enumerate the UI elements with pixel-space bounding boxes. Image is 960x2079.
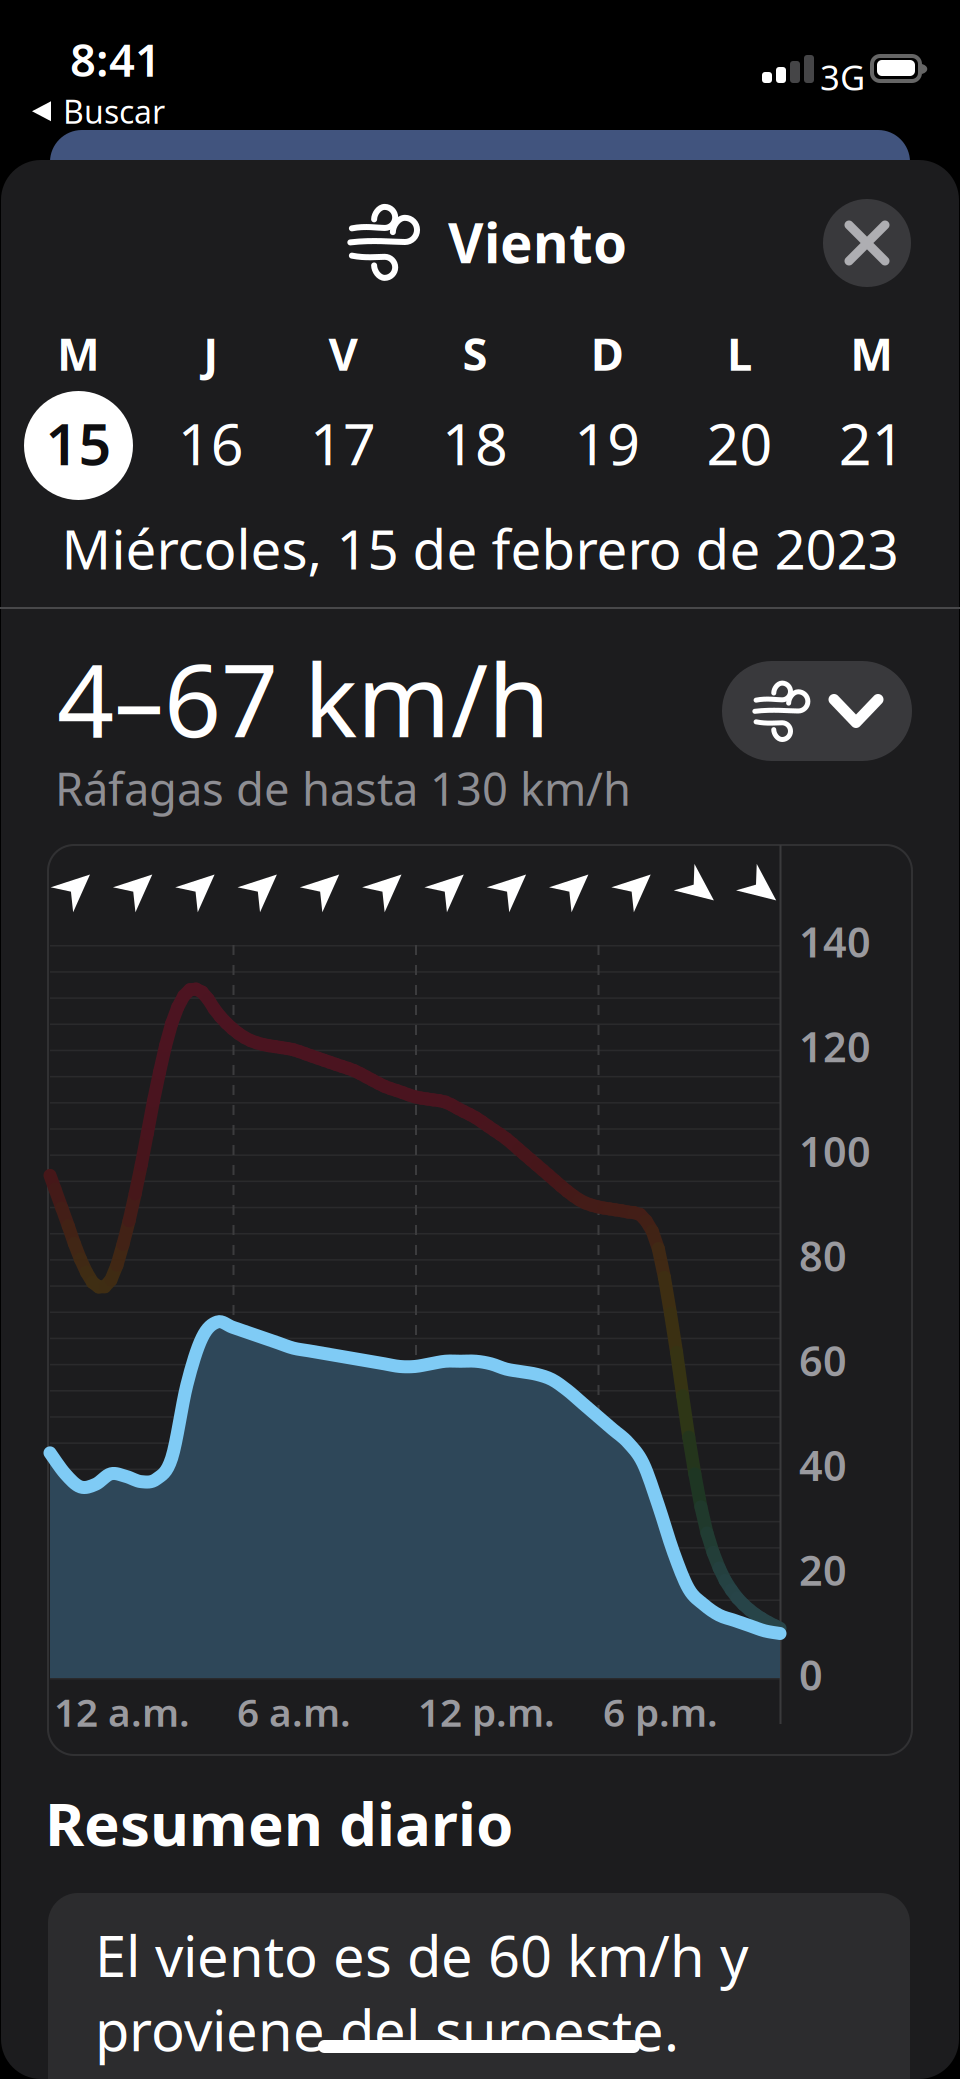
staticText: 120 <box>799 1019 871 1074</box>
staticText: D <box>591 323 624 383</box>
staticText: 100 <box>799 1123 871 1178</box>
staticText: 12 a.m. <box>54 1686 190 1737</box>
staticText: 18 <box>442 405 508 481</box>
staticText: 40 <box>799 1438 847 1492</box>
button[interactable]: J <box>145 329 277 519</box>
staticText: 80 <box>799 1228 847 1283</box>
staticText: Miércoles, 15 de febrero de 2023 <box>61 512 898 585</box>
button[interactable]: D <box>541 329 673 519</box>
button[interactable]: Cerrar <box>823 199 911 287</box>
staticText: Buscar <box>63 90 165 132</box>
staticText: 4–67 km/h <box>57 632 550 765</box>
button[interactable]: M <box>806 329 938 519</box>
button[interactable]: S <box>409 329 541 519</box>
staticText: 17 <box>310 405 376 481</box>
staticText: M <box>850 323 893 383</box>
staticText: L <box>727 323 752 383</box>
staticText: V <box>328 323 357 383</box>
staticText: 60 <box>799 1333 847 1388</box>
button[interactable]: V <box>277 329 409 519</box>
staticText: El viento es de 60 km/h y proviene del s… <box>95 1918 749 2079</box>
staticText: 3G <box>820 54 865 100</box>
staticText: Viento <box>448 206 627 278</box>
staticText: 15 <box>45 405 111 481</box>
staticText: 6 p.m. <box>603 1686 718 1737</box>
staticText: 21 <box>839 405 905 481</box>
button[interactable]: M <box>12 329 144 519</box>
staticText: J <box>203 323 218 383</box>
staticText: Resumen diario <box>45 1783 514 1863</box>
button[interactable]: L <box>673 329 805 519</box>
staticText: 6 a.m. <box>237 1686 351 1737</box>
staticText: 16 <box>178 405 244 481</box>
staticText: 20 <box>799 1542 847 1597</box>
staticText: S <box>463 323 488 383</box>
staticText: Ráfagas de hasta 130 km/h <box>55 758 631 818</box>
staticText: M <box>57 323 100 383</box>
staticText: 0 <box>799 1647 823 1702</box>
staticText: 8:41 <box>70 29 161 89</box>
button[interactable]: Cambiar métrica <box>722 661 912 761</box>
staticText: 12 p.m. <box>418 1686 555 1737</box>
staticText: 20 <box>706 405 772 481</box>
staticText: 19 <box>574 405 640 481</box>
staticText: 140 <box>799 914 871 969</box>
button[interactable]: Buscar <box>32 90 165 132</box>
